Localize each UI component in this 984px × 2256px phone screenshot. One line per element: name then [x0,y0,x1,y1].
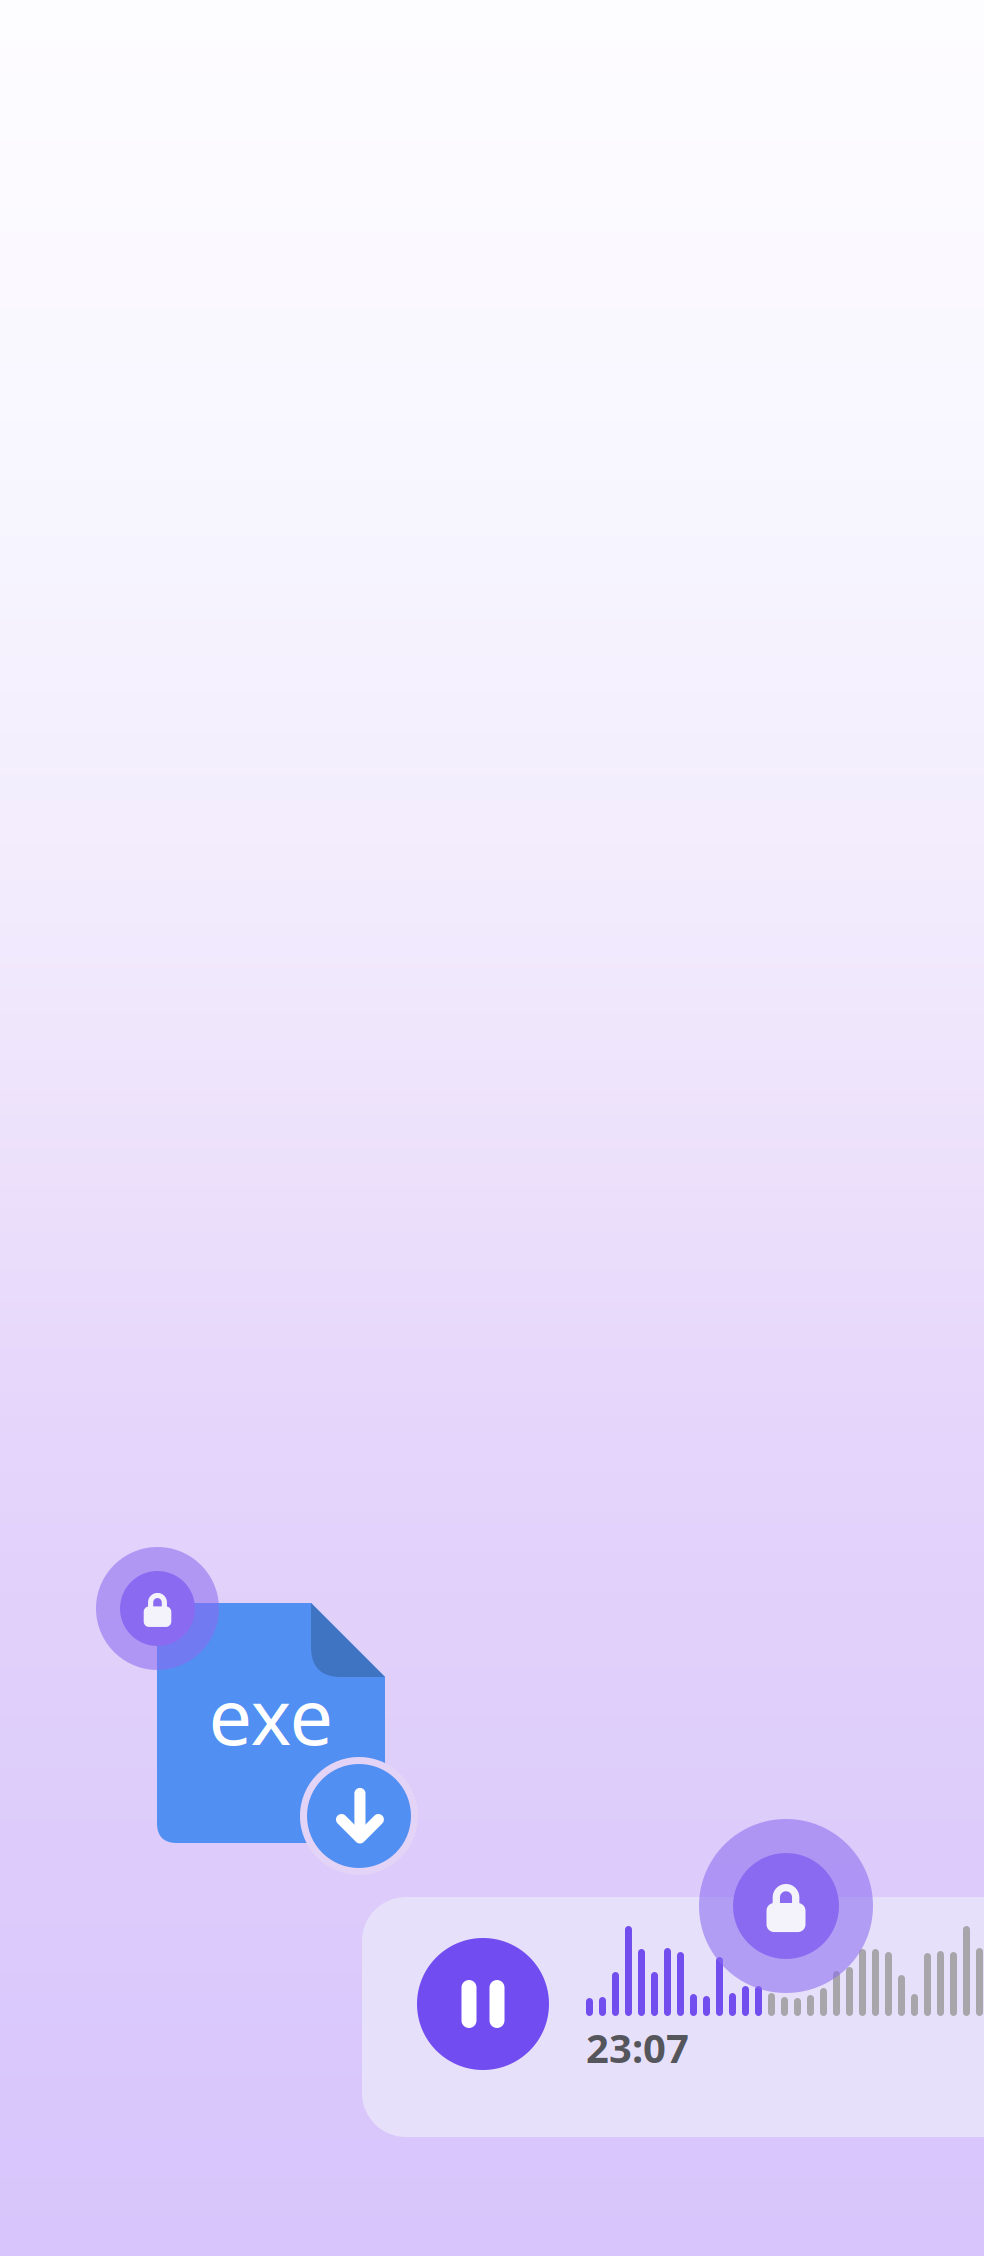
staticText: 23:07 [586,2021,689,2074]
button[interactable]: Pause [417,1938,549,2070]
button[interactable]: Encrypted executable attachment [157,1603,385,1843]
button[interactable]: Download [300,1757,418,1875]
staticText: exe [208,1664,333,1766]
